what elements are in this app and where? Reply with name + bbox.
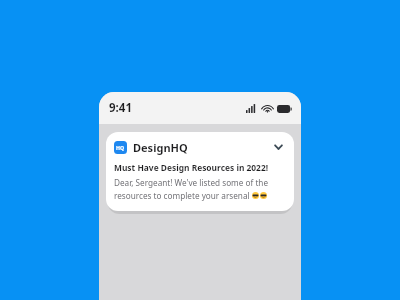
button[interactable]: HQ — [106, 132, 294, 211]
staticText: HQ — [116, 144, 125, 151]
staticText: 9:41 — [109, 100, 132, 116]
staticText: Dear, Sergeant! We've listed some of the… — [114, 177, 286, 188]
button[interactable]: Expand notification — [270, 139, 286, 155]
staticText: Must Have Design Resources in 2022! — [114, 162, 269, 173]
staticText: DesignHQ — [133, 140, 188, 155]
staticText: resources to complete your arsenal — [114, 190, 252, 201]
